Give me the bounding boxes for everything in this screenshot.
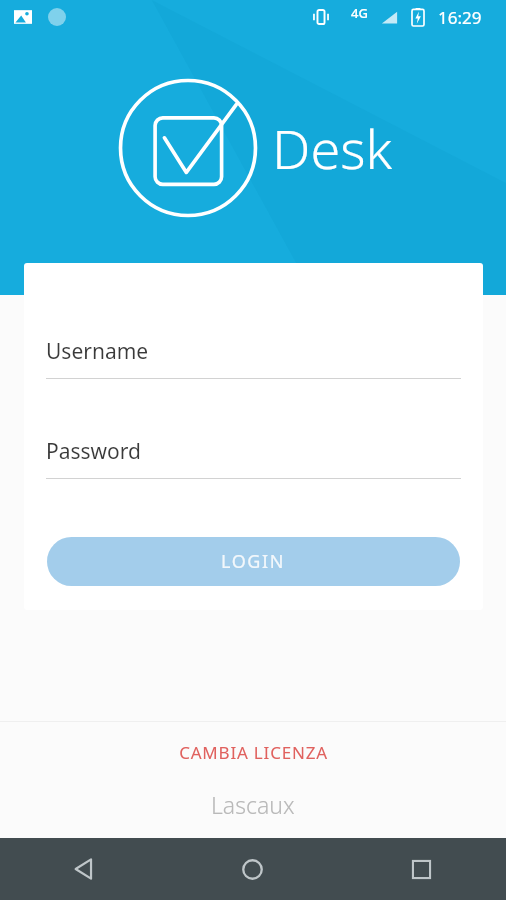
staticText: LOGIN [221, 549, 286, 574]
staticText: Username [46, 337, 149, 366]
staticText: Password [46, 437, 141, 466]
staticText: Desk [272, 111, 393, 185]
button[interactable]: Home [168, 838, 337, 900]
button[interactable]: CAMBIA LICENZA [0, 733, 506, 771]
button[interactable]: Back [0, 838, 168, 900]
staticText: CAMBIA LICENZA [179, 741, 328, 764]
staticText: 4G [351, 4, 368, 22]
button[interactable]: Username [46, 331, 461, 379]
button[interactable]: Recent apps [337, 838, 506, 900]
staticText: Lascaux [211, 789, 295, 819]
button[interactable]: Password [46, 431, 461, 479]
button[interactable]: LOGIN [47, 537, 460, 586]
staticText: 16:29 [438, 6, 482, 29]
